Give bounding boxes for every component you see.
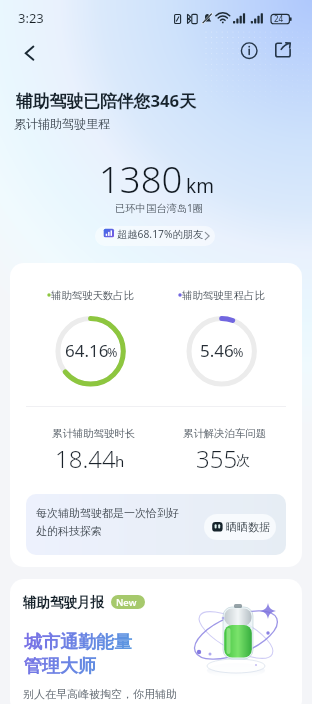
staticText: % (107, 344, 118, 361)
staticText: 64.16 (65, 339, 109, 362)
button[interactable] (95, 226, 215, 246)
button[interactable] (204, 514, 276, 540)
staticText: New (116, 596, 137, 609)
button[interactable]: Info (237, 39, 261, 63)
staticText: 累计解决泊车问题 (183, 427, 267, 440)
button[interactable] (10, 579, 302, 704)
staticText: 累计辅助驾驶里程 (14, 116, 110, 131)
staticText: 超越68.17%的朋友 (117, 227, 204, 241)
staticText: % (233, 344, 244, 361)
staticText: 辅助驾驶里程占比 (182, 289, 266, 302)
staticText: 辅助驾驶已陪伴您346天 (16, 89, 196, 112)
staticText: 355 (196, 442, 238, 475)
staticText: h (115, 451, 125, 471)
staticText: 已环中国台湾岛1圈 (115, 201, 204, 215)
staticText: 辅助驾驶月报 (23, 594, 104, 611)
staticText: 辅助驾驶天数占比 (51, 289, 135, 302)
staticText: 城市通勤能量 管理大师 (24, 631, 132, 677)
staticText: 晒晒数据 (226, 520, 270, 534)
staticText: 每次辅助驾驶都是一次恰到好处的科技探索 (36, 506, 182, 538)
staticText: 别人在早高峰被掏空，你用辅助 (23, 687, 177, 701)
staticText: 1380 (99, 154, 183, 204)
staticText: 24 (274, 13, 284, 24)
button[interactable]: Share (271, 38, 295, 62)
staticText: 18.44 (55, 442, 116, 475)
button[interactable]: Back (16, 40, 44, 68)
staticText: 累计辅助驾驶时长 (52, 427, 136, 440)
staticText: 5.46 (200, 339, 234, 362)
staticText: 次 (236, 452, 250, 470)
staticText: km (186, 173, 214, 199)
staticText: 3:23 (18, 9, 44, 27)
